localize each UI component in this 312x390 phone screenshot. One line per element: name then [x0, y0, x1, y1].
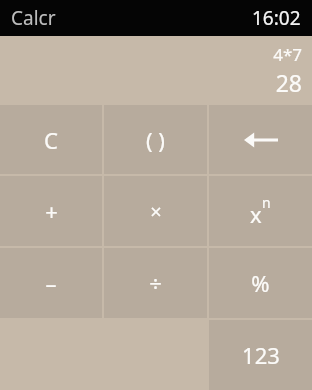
staticText: x: [250, 199, 262, 229]
staticText: %: [251, 268, 270, 298]
button[interactable]: 123: [209, 320, 312, 390]
button[interactable]: Backspace: [209, 105, 312, 174]
staticText: ( ): [146, 125, 165, 155]
button[interactable]: x: [209, 176, 312, 246]
button[interactable]: ( ): [104, 105, 207, 174]
staticText: n: [262, 193, 271, 212]
button[interactable]: +: [0, 176, 102, 246]
staticText: +: [45, 196, 58, 226]
staticText: C: [44, 125, 58, 155]
staticText: 16:02: [252, 5, 301, 31]
button[interactable]: ÷: [104, 248, 207, 318]
staticText: ×: [150, 198, 162, 225]
button[interactable]: ×: [104, 176, 207, 246]
staticText: ÷: [149, 268, 162, 298]
staticText: –: [45, 268, 57, 298]
staticText: Calcr: [11, 5, 56, 31]
staticText: 123: [242, 340, 280, 370]
button[interactable]: %: [209, 248, 312, 318]
button[interactable]: –: [0, 248, 102, 318]
button[interactable]: C: [0, 105, 102, 174]
staticText: 28: [275, 67, 302, 98]
staticText: 4*7: [273, 43, 302, 66]
